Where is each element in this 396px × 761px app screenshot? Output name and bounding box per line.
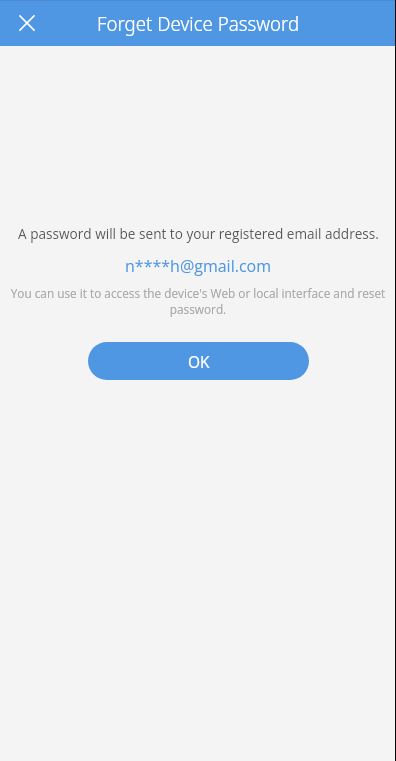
staticText: You can use it to access the device's We… (7, 285, 389, 317)
staticText: OK (188, 351, 210, 372)
staticText: Forget Device Password (97, 10, 300, 37)
staticText: n****h@gmail.com (125, 255, 271, 277)
staticText: A password will be sent to your register… (18, 224, 379, 243)
button[interactable]: Close (10, 6, 44, 40)
button[interactable]: OK (88, 342, 309, 380)
